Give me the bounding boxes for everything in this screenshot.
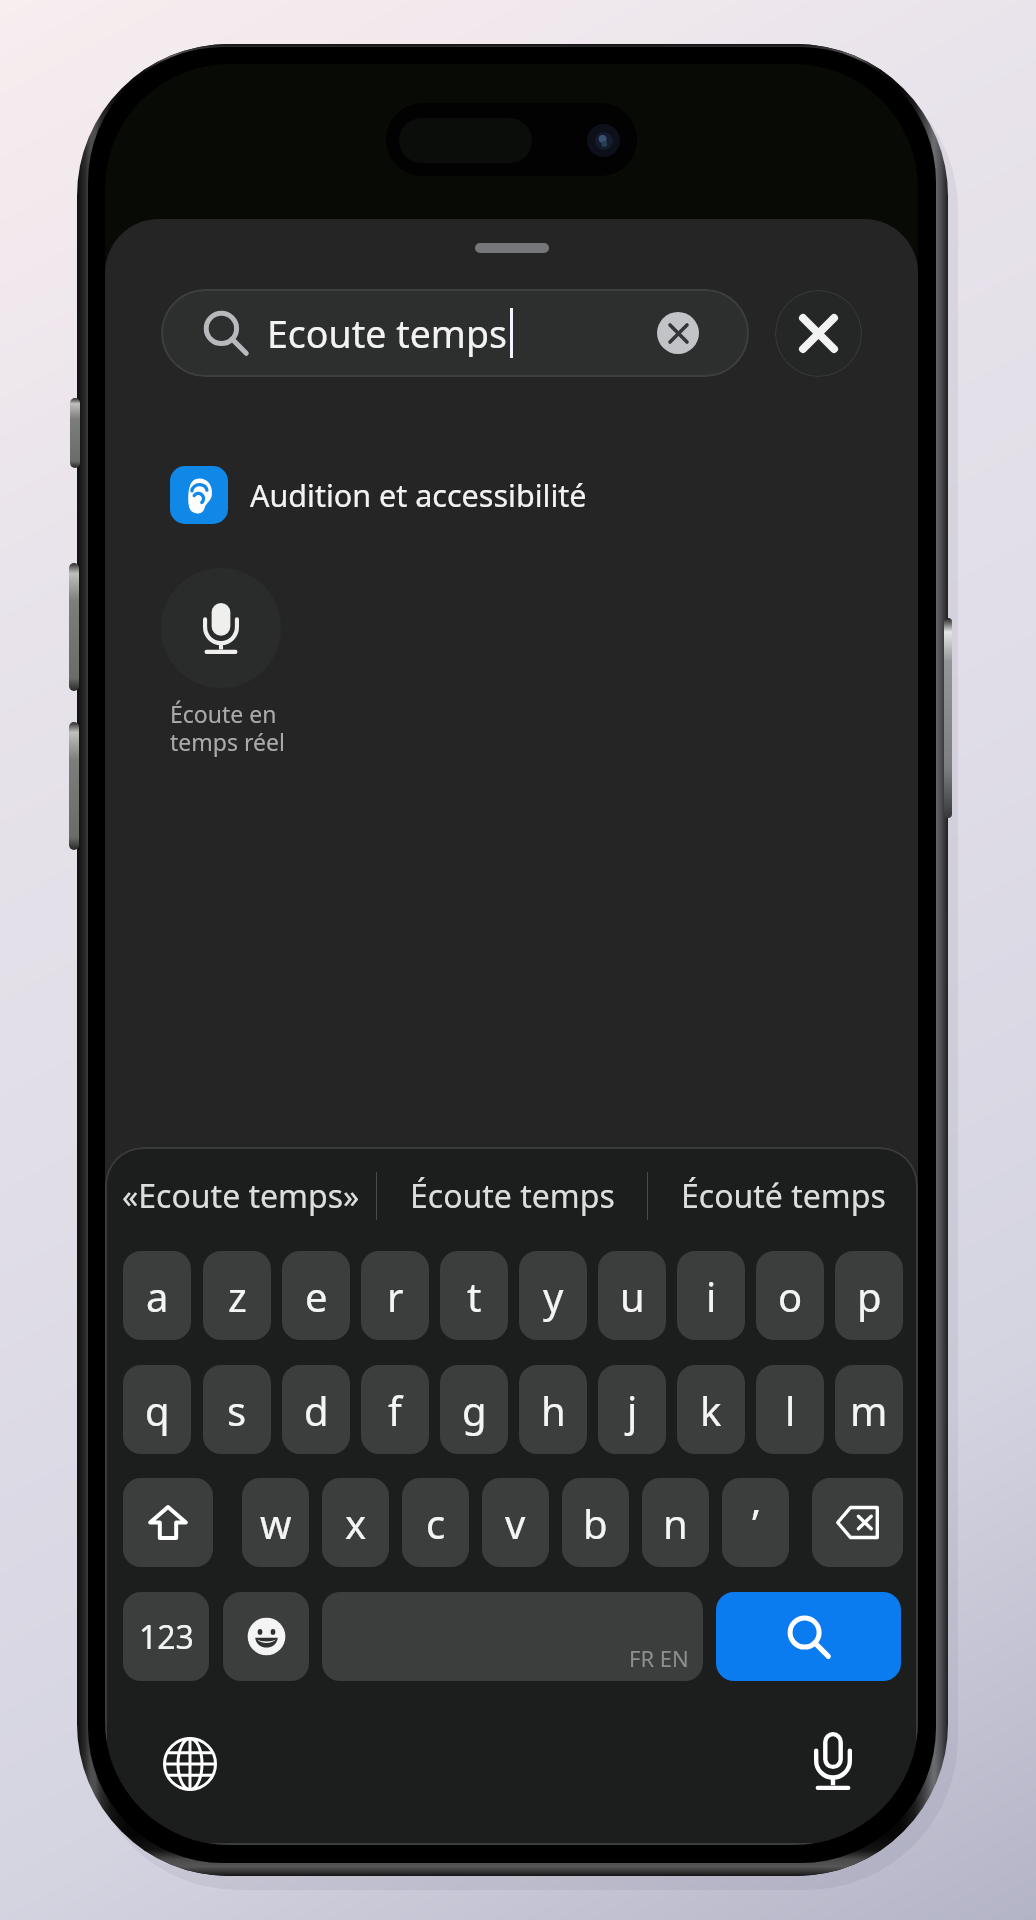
button[interactable]: ’	[722, 1478, 789, 1567]
staticText: l	[785, 1383, 796, 1437]
button[interactable]: m	[835, 1365, 903, 1454]
button[interactable]: b	[562, 1478, 629, 1567]
staticText: x	[345, 1496, 367, 1550]
staticText: a	[146, 1269, 169, 1323]
button[interactable]: r	[361, 1251, 429, 1340]
button[interactable]: Écoute en temps réel	[161, 568, 291, 750]
staticText: c	[426, 1496, 446, 1550]
staticText: s	[227, 1383, 247, 1437]
button[interactable]: w	[242, 1478, 309, 1567]
button[interactable]: Clear text	[657, 312, 699, 354]
staticText: Écoute temps	[410, 1174, 615, 1218]
button[interactable]: 123	[123, 1592, 209, 1681]
button[interactable]: h	[519, 1365, 587, 1454]
button[interactable]: y	[519, 1251, 587, 1340]
button[interactable]: i	[677, 1251, 745, 1340]
button[interactable]: Backspace	[812, 1478, 903, 1567]
staticText: t	[467, 1269, 482, 1323]
button[interactable]: Emoji	[223, 1592, 309, 1681]
staticText: n	[663, 1496, 688, 1550]
button[interactable]: u	[598, 1251, 666, 1340]
staticText: Écouté temps	[681, 1174, 886, 1218]
button[interactable]: e	[282, 1251, 350, 1340]
staticText: g	[462, 1383, 487, 1437]
staticText: k	[700, 1383, 722, 1437]
staticText: 123	[139, 1615, 194, 1659]
button[interactable]: g	[440, 1365, 508, 1454]
button[interactable]: t	[440, 1251, 508, 1340]
staticText: FR EN	[629, 1643, 689, 1673]
staticText: b	[583, 1496, 608, 1550]
staticText: i	[706, 1269, 717, 1323]
staticText: f	[388, 1383, 402, 1437]
button[interactable]: Shift	[123, 1478, 213, 1567]
button[interactable]: f	[361, 1365, 429, 1454]
button[interactable]: Écouté temps	[648, 1147, 918, 1245]
staticText: h	[541, 1383, 566, 1437]
button[interactable]: d	[282, 1365, 350, 1454]
button[interactable]: o	[756, 1251, 824, 1340]
staticText: y	[543, 1269, 564, 1323]
button[interactable]: Voice input	[791, 1719, 875, 1803]
button[interactable]: Écoute temps	[377, 1147, 647, 1245]
button[interactable]: z	[203, 1251, 271, 1340]
button[interactable]: s	[203, 1365, 271, 1454]
staticText: w	[260, 1496, 292, 1550]
button[interactable]: v	[482, 1478, 549, 1567]
button[interactable]: Space	[322, 1592, 703, 1681]
staticText: e	[305, 1269, 328, 1323]
button[interactable]: a	[123, 1251, 191, 1340]
staticText: Ecoute temps	[267, 308, 507, 359]
staticText: ’	[752, 1496, 759, 1550]
staticText: z	[228, 1269, 247, 1323]
button[interactable]: Audition et accessibilité	[105, 447, 918, 543]
button[interactable]: j	[598, 1365, 666, 1454]
button[interactable]: p	[835, 1251, 903, 1340]
staticText: «Ecoute temps»	[122, 1174, 360, 1218]
button[interactable]: Ecoute temps	[161, 289, 749, 377]
button[interactable]: l	[756, 1365, 824, 1454]
staticText: v	[505, 1496, 526, 1550]
button[interactable]: k	[677, 1365, 745, 1454]
button[interactable]: q	[123, 1365, 191, 1454]
staticText: Écoute en temps réel	[170, 698, 285, 758]
button[interactable]: c	[402, 1478, 469, 1567]
button[interactable]: Change keyboard language	[148, 1722, 232, 1806]
button[interactable]: Search	[716, 1592, 901, 1681]
staticText: m	[850, 1383, 888, 1437]
staticText: Audition et accessibilité	[250, 474, 587, 516]
button[interactable]: «Ecoute temps»	[105, 1147, 376, 1245]
staticText: r	[387, 1269, 404, 1323]
staticText: o	[778, 1269, 803, 1323]
button[interactable]: x	[322, 1478, 389, 1567]
staticText: q	[145, 1383, 170, 1437]
staticText: u	[620, 1269, 645, 1323]
staticText: p	[857, 1269, 882, 1323]
staticText: j	[627, 1383, 638, 1437]
staticText: d	[304, 1383, 329, 1437]
button[interactable]: n	[642, 1478, 709, 1567]
button[interactable]: Close search	[775, 290, 862, 377]
